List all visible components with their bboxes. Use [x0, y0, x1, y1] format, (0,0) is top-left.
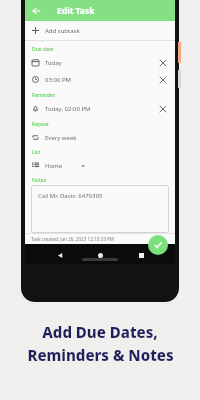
button[interactable]: Save task	[148, 235, 168, 255]
button[interactable]: Back	[54, 249, 66, 261]
staticText: Every week	[45, 134, 77, 142]
staticText: Notes	[32, 177, 47, 184]
staticText: Add subtask	[45, 27, 80, 35]
staticText: Today	[45, 59, 62, 67]
button[interactable]: Clear	[158, 104, 168, 114]
button[interactable]: Recents	[135, 249, 147, 261]
button[interactable]: Every week	[25, 129, 175, 146]
staticText: 03:00 PM	[45, 76, 71, 84]
button[interactable]: Clear	[158, 58, 168, 68]
staticText: Call Mr. Davis: 6479395	[38, 192, 103, 200]
staticText: Repeat	[32, 121, 49, 128]
button[interactable]: Today, 02:00 PM	[25, 100, 175, 117]
staticText: Due date	[32, 46, 54, 53]
staticText: Edit Task	[57, 5, 95, 17]
staticText: Add Due Dates,	[42, 322, 158, 342]
staticText: Reminder	[32, 92, 56, 99]
staticText: List	[32, 149, 41, 156]
staticText: Reminders & Notes	[27, 345, 174, 365]
button[interactable]: Home	[25, 157, 175, 174]
button[interactable]: Home	[94, 249, 106, 261]
button[interactable]: Today	[25, 54, 175, 71]
button[interactable]: Back	[29, 4, 43, 18]
button[interactable]: Call Mr. Davis: 6479395	[31, 185, 169, 233]
button[interactable]: 03:00 PM	[25, 71, 175, 88]
staticText: Today, 02:00 PM	[45, 105, 91, 113]
staticText: Home	[45, 162, 63, 170]
staticText: Task created: Jan 26, 2023 12:10:33 PM	[31, 236, 114, 242]
button[interactable]: Add subtask	[25, 21, 175, 40]
button[interactable]: Clear	[158, 75, 168, 85]
